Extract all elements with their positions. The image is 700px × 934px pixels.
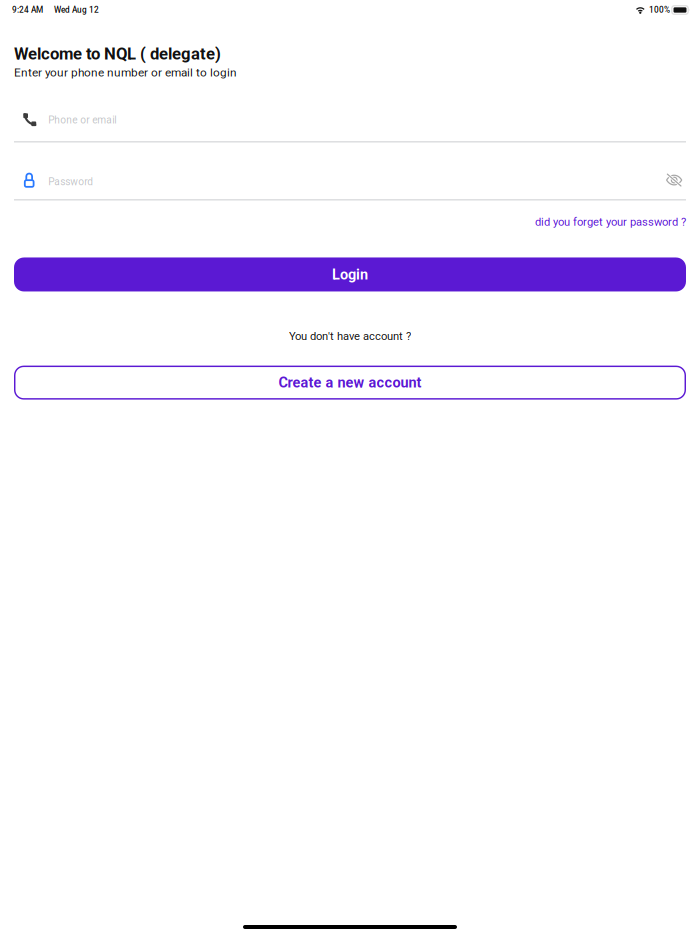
- staticText: You don't have account ?: [289, 329, 411, 343]
- button[interactable]: Show password: [660, 167, 686, 193]
- staticText: Welcome to NQL ( delegate): [14, 44, 221, 63]
- staticText: Create a new account: [278, 374, 421, 391]
- staticText: Login: [332, 266, 368, 283]
- button[interactable]: Password: [14, 167, 686, 199]
- staticText: Enter your phone number or email to logi…: [14, 65, 237, 79]
- button[interactable]: did you forget your password ?: [535, 215, 686, 228]
- button[interactable]: Phone or email: [14, 110, 686, 141]
- staticText: Phone or email: [48, 114, 116, 126]
- staticText: Password: [48, 176, 93, 188]
- staticText: 9:24 AM: [12, 5, 43, 15]
- staticText: Wed Aug 12: [54, 5, 99, 15]
- button[interactable]: Create a new account: [14, 366, 686, 400]
- staticText: did you forget your password ?: [535, 215, 686, 228]
- staticText: 100%: [649, 5, 670, 15]
- button[interactable]: Login: [14, 257, 686, 291]
